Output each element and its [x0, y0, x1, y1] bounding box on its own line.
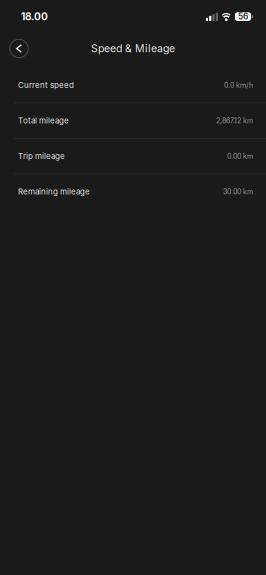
staticText: Trip mileage: [18, 151, 65, 161]
button[interactable]: Trip mileage: [0, 139, 266, 173]
staticText: Current speed: [18, 80, 74, 90]
button[interactable]: Remaining mileage: [0, 174, 266, 209]
staticText: 18.00: [21, 10, 48, 23]
button[interactable]: Back: [5, 34, 33, 62]
staticText: Speed & Mileage: [91, 42, 175, 55]
button[interactable]: Total mileage: [0, 103, 266, 138]
staticText: 0.0 km/h: [224, 81, 253, 89]
staticText: Remaining mileage: [18, 187, 90, 196]
staticText: Total mileage: [18, 116, 69, 125]
staticText: 56: [238, 12, 248, 22]
staticText: 30.00 km: [223, 187, 253, 196]
staticText: 2,867.12 km: [216, 116, 253, 125]
button[interactable]: Current speed: [0, 68, 266, 102]
staticText: 0.00 km: [227, 152, 253, 160]
